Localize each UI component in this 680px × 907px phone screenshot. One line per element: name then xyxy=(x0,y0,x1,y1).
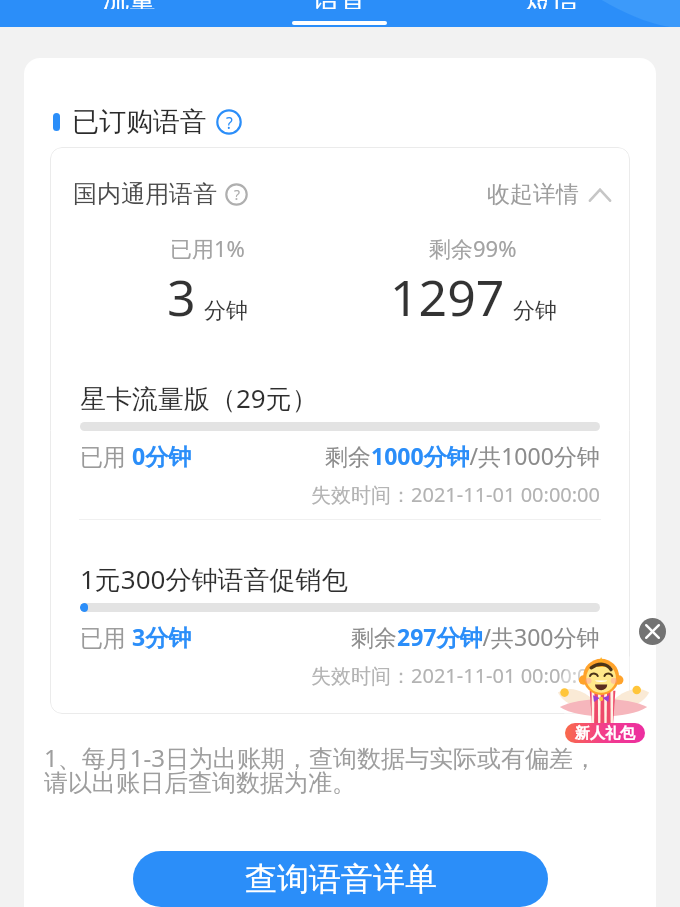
staticText: 查询语音详单 xyxy=(245,859,437,899)
button[interactable]: Help xyxy=(216,109,242,135)
staticText: 失效时间：2021-11-01 00:00:00 xyxy=(80,662,600,689)
staticText: 收起详情 xyxy=(487,180,579,209)
staticText: 失效时间：2021-11-01 00:00:00 xyxy=(80,481,600,508)
staticText: 1元300分钟语音促销包 xyxy=(80,561,348,597)
staticText: 请以出账日后查询数据为准。 xyxy=(44,768,356,798)
staticText: 星卡流量版（29元） xyxy=(80,380,318,416)
staticText: 1297 xyxy=(390,263,505,331)
staticText: 流量 xyxy=(102,0,156,9)
staticText: 已订购语音 xyxy=(72,105,207,139)
button[interactable]: 流量 xyxy=(24,0,234,27)
button[interactable]: Help xyxy=(225,183,248,206)
staticText: 分钟 xyxy=(204,297,248,325)
staticText: 新人礼包 xyxy=(575,724,635,743)
staticText: 已用 3分钟 xyxy=(80,621,192,652)
staticText: 已用1% xyxy=(170,233,245,263)
staticText: 短信 xyxy=(524,0,578,9)
staticText: 3 xyxy=(167,263,196,331)
staticText: 语音 xyxy=(313,0,367,9)
button[interactable]: 短信 xyxy=(445,0,656,27)
button[interactable]: 收起详情 xyxy=(487,180,611,209)
staticText: 分钟 xyxy=(513,297,557,325)
staticText: 剩余99% xyxy=(429,233,517,263)
staticText: 已用 0分钟 xyxy=(80,440,192,471)
staticText: 剩余297分钟/共300分钟 xyxy=(351,621,600,652)
staticText: 国内通用语音 xyxy=(73,179,217,209)
button[interactable]: Close xyxy=(639,618,666,645)
staticText: 1、每月1-3日为出账期，查询数据与实际或有偏差， xyxy=(44,741,597,774)
staticText: ? xyxy=(226,112,233,133)
button[interactable]: 查询语音详单 xyxy=(133,851,548,907)
staticText: 剩余1000分钟/共1000分钟 xyxy=(325,440,600,471)
staticText: ? xyxy=(234,185,240,204)
button[interactable]: 语音 xyxy=(234,0,445,27)
button[interactable]: New user gift xyxy=(556,653,651,743)
